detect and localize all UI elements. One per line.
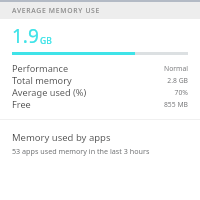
- staticText: 2.8 GB: [167, 76, 188, 85]
- staticText: Performance: [12, 62, 69, 74]
- button[interactable]: Performance: [0, 62, 200, 74]
- staticText: 855 MB: [163, 100, 188, 109]
- button[interactable]: Free: [0, 98, 200, 110]
- staticText: 53 apps used memory in the last 3 hours: [12, 146, 150, 156]
- staticText: Memory used by apps: [12, 131, 111, 144]
- staticText: Average used (%): [12, 86, 87, 98]
- staticText: Free: [12, 98, 31, 110]
- staticText: Normal: [163, 64, 188, 73]
- staticText: Total memory: [12, 74, 72, 86]
- staticText: AVERAGE MEMORY USE: [12, 6, 101, 15]
- button[interactable]: Average used (%): [0, 86, 200, 98]
- button[interactable]: Total memory: [0, 74, 200, 86]
- button[interactable]: Memory used by apps: [0, 130, 200, 157]
- staticText: GB: [40, 35, 52, 47]
- staticText: 70%: [174, 88, 188, 97]
- staticText: 1.9: [12, 23, 39, 49]
